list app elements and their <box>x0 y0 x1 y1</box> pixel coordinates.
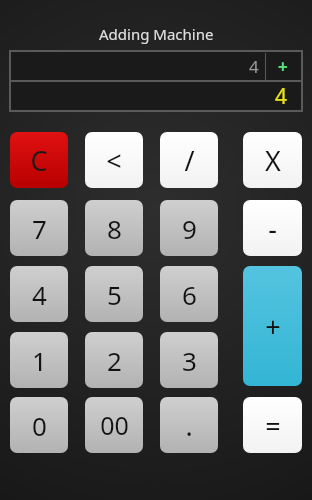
staticText: 4 <box>275 82 288 109</box>
staticText: 8 <box>107 211 122 246</box>
staticText: . <box>185 407 193 444</box>
button[interactable]: C <box>10 132 68 188</box>
staticText: 9 <box>182 211 197 246</box>
staticText: C <box>30 142 48 179</box>
button[interactable]: / <box>160 132 218 188</box>
button[interactable]: 9 <box>160 200 218 256</box>
button[interactable]: 4 <box>12 53 300 80</box>
staticText: < <box>106 142 122 179</box>
staticText: X <box>265 142 281 179</box>
button[interactable]: 8 <box>85 200 143 256</box>
button[interactable]: X <box>243 132 302 188</box>
staticText: = <box>265 407 281 444</box>
staticText: 3 <box>182 343 197 378</box>
button[interactable]: 00 <box>85 397 143 453</box>
button[interactable]: = <box>243 397 302 453</box>
staticText: - <box>268 210 277 247</box>
button[interactable]: 4 <box>12 82 288 109</box>
button[interactable]: - <box>243 200 302 256</box>
button[interactable]: 0 <box>10 397 68 453</box>
staticText: 6 <box>182 277 197 312</box>
button[interactable]: < <box>85 132 143 188</box>
staticText: 4 <box>32 277 47 312</box>
staticText: 2 <box>107 343 122 378</box>
staticText: 7 <box>32 211 47 246</box>
staticText: 4 <box>249 55 259 78</box>
button[interactable]: + <box>243 266 302 386</box>
button[interactable]: 3 <box>160 332 218 388</box>
button[interactable]: 2 <box>85 332 143 388</box>
button[interactable]: 6 <box>160 266 218 322</box>
staticText: + <box>278 55 288 78</box>
button[interactable]: 5 <box>85 266 143 322</box>
staticText: / <box>184 142 195 179</box>
button[interactable]: 7 <box>10 200 68 256</box>
button[interactable]: 1 <box>10 332 68 388</box>
staticText: Adding Machine <box>99 24 214 44</box>
staticText: 0 <box>32 408 47 443</box>
staticText: 1 <box>32 343 47 378</box>
staticText: 00 <box>100 408 129 442</box>
staticText: 5 <box>107 277 122 312</box>
button[interactable]: 4 <box>10 266 68 322</box>
staticText: + <box>265 308 281 345</box>
button[interactable]: . <box>160 397 218 453</box>
